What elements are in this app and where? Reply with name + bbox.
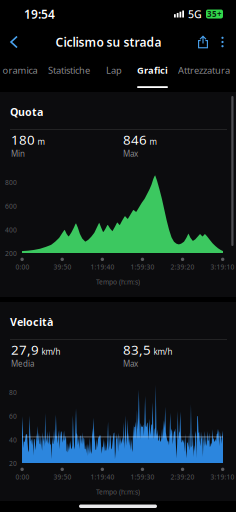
staticText: Min [11,148,25,159]
staticText: Max [123,148,138,159]
staticText: Max [123,358,138,369]
staticText: km/h [41,346,60,357]
staticText: 40 [9,435,17,444]
staticText: 2:39:20 [170,472,194,481]
staticText: 1:19:40 [90,472,114,481]
button[interactable]: Statistiche [48,56,90,92]
staticText: 83,5 [123,341,151,358]
staticText: Statistiche [48,64,90,76]
staticText: Ciclismo su strada [55,34,161,50]
button[interactable]: Lap [106,56,122,92]
staticText: 20 [9,459,17,468]
staticText: 35+ [207,9,222,19]
staticText: 3:19:10 [210,262,234,271]
staticText: 5G [188,7,202,21]
staticText: Velocità [10,315,53,329]
staticText: 60 [9,412,17,421]
staticText: Media [11,358,34,369]
staticText: m [149,136,156,147]
staticText: 400 [5,225,17,234]
staticText: 600 [5,202,17,211]
button[interactable]: Share [192,32,214,52]
staticText: Lap [106,64,122,76]
staticText: 2:39:20 [170,262,194,271]
staticText: Tempo (h:m:s) [96,277,140,286]
staticText: 19:54 [24,6,55,22]
button[interactable]: Attrezzatura [178,56,230,92]
button[interactable]: oramica [2,56,38,92]
staticText: 27,9 [11,341,39,358]
staticText: 1:59:30 [130,262,154,271]
staticText: 180 [11,131,35,148]
staticText: 1:59:30 [130,472,154,481]
staticText: km/h [153,346,172,357]
staticText: 3:19:10 [210,472,234,481]
staticText: 80 [9,388,17,397]
staticText: 0:00 [15,472,29,481]
staticText: 200 [5,249,17,258]
button[interactable]: Back [0,31,25,52]
staticText: Quota [10,105,43,119]
staticText: 39:50 [53,472,71,481]
button[interactable]: Grafici [137,56,168,92]
staticText: 846 [123,131,147,148]
staticText: 39:50 [53,262,71,271]
staticText: 800 [5,178,17,187]
staticText: Attrezzatura [178,64,230,76]
button[interactable]: More options [214,32,236,51]
staticText: 0:00 [15,262,29,271]
staticText: Grafici [137,64,168,76]
staticText: oramica [2,64,37,76]
staticText: Tempo (h:m:s) [96,487,140,496]
staticText: 1:19:40 [90,262,114,271]
staticText: m [37,136,44,147]
